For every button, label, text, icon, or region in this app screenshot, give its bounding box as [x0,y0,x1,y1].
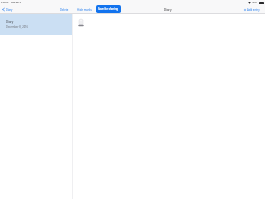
staticText: December 8, 2016 [6,25,29,29]
button[interactable]: Delete [59,5,70,14]
button[interactable]: Add entry [243,5,261,14]
staticText: Delete [60,8,69,12]
staticText: Wed Dec 8 [11,1,21,4]
button[interactable]: Save for sharing [96,5,121,13]
staticText: Hide marks [77,8,92,12]
staticText: 2:20 PM [1,1,9,4]
staticText: Diary [6,8,13,12]
button[interactable]: Open attachment [78,19,84,27]
staticText: Save for sharing [98,7,119,11]
staticText: Diary [164,8,172,12]
button[interactable]: Diary [0,14,72,35]
button[interactable]: Hide marks [76,5,93,14]
staticText: Diary [6,20,14,24]
button[interactable]: Back to Diary [0,5,14,14]
staticText: Add entry [247,8,260,12]
staticText: 100% [252,1,258,4]
